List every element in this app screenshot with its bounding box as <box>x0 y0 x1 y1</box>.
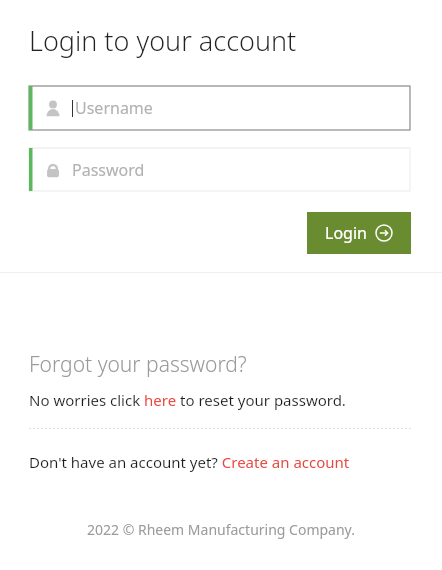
staticText: No worries click here to reset your pass… <box>29 390 346 410</box>
button[interactable]: Password field <box>29 148 410 191</box>
button[interactable]: Username field <box>29 86 410 130</box>
staticText: Password <box>72 159 145 181</box>
staticText: Username <box>75 97 153 119</box>
staticText: 2022 © Rheem Manufacturing Company. <box>87 520 355 539</box>
staticText: Forgot your password? <box>29 350 247 379</box>
button[interactable]: Don't have an account yet? Create an acc… <box>29 452 350 472</box>
staticText: Login <box>325 222 367 244</box>
staticText: Login to your account <box>29 22 297 59</box>
button[interactable]: No worries click here to reset your pass… <box>29 390 346 410</box>
staticText: Don't have an account yet? Create an acc… <box>29 452 350 472</box>
button[interactable]: Login <box>307 212 411 254</box>
